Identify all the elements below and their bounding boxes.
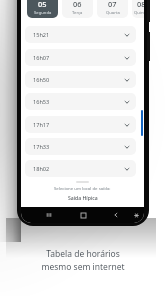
other: Expandir — [124, 32, 130, 38]
other: Expandir — [124, 166, 130, 172]
other: Expandir — [124, 55, 130, 61]
button[interactable]: 08 — [132, 0, 144, 18]
other: Expandir — [124, 122, 130, 128]
staticText: Quinta — [134, 10, 144, 16]
button[interactable]: 17h33 — [25, 138, 136, 155]
button[interactable]: 16h07 — [25, 49, 136, 66]
button[interactable]: 16h50 — [25, 71, 136, 88]
button[interactable]: 15h21 — [25, 26, 136, 43]
button[interactable]: 07 — [97, 0, 128, 18]
staticText: 17h17 — [33, 121, 50, 129]
button[interactable]: 06 — [62, 0, 93, 18]
other: Expandir — [124, 99, 130, 105]
staticText: 07 — [108, 0, 117, 9]
button[interactable]: Recentes — [43, 209, 55, 221]
staticText: 17h33 — [33, 143, 50, 151]
staticText: 18h02 — [33, 165, 50, 173]
staticText: Quarta — [106, 10, 120, 16]
staticText: 16h53 — [33, 98, 50, 106]
staticText: 15h21 — [33, 31, 50, 39]
staticText: 16h07 — [33, 54, 50, 62]
other: Expandir — [124, 77, 130, 83]
staticText: mesmo sem internet — [41, 261, 125, 273]
staticText: Segunda — [34, 10, 52, 16]
staticText: Tabela de horários — [46, 248, 120, 260]
button[interactable]: 16h53 — [25, 93, 136, 110]
button[interactable]: Voltar — [110, 209, 122, 221]
button[interactable]: Início — [77, 209, 89, 221]
staticText: Selecione um local de saída: — [54, 185, 111, 191]
staticText: 08 — [137, 0, 144, 9]
button[interactable]: 05 — [27, 0, 58, 18]
staticText: 16h50 — [33, 76, 50, 84]
other: Expandir — [124, 144, 130, 150]
button[interactable]: Assistente — [131, 210, 141, 220]
staticText: 06 — [73, 0, 82, 9]
staticText: Terça — [72, 10, 83, 16]
button[interactable]: 17h17 — [25, 116, 136, 133]
staticText: Saída Hípica — [68, 195, 98, 202]
staticText: 05 — [38, 0, 47, 9]
button[interactable]: 18h02 — [25, 160, 136, 177]
